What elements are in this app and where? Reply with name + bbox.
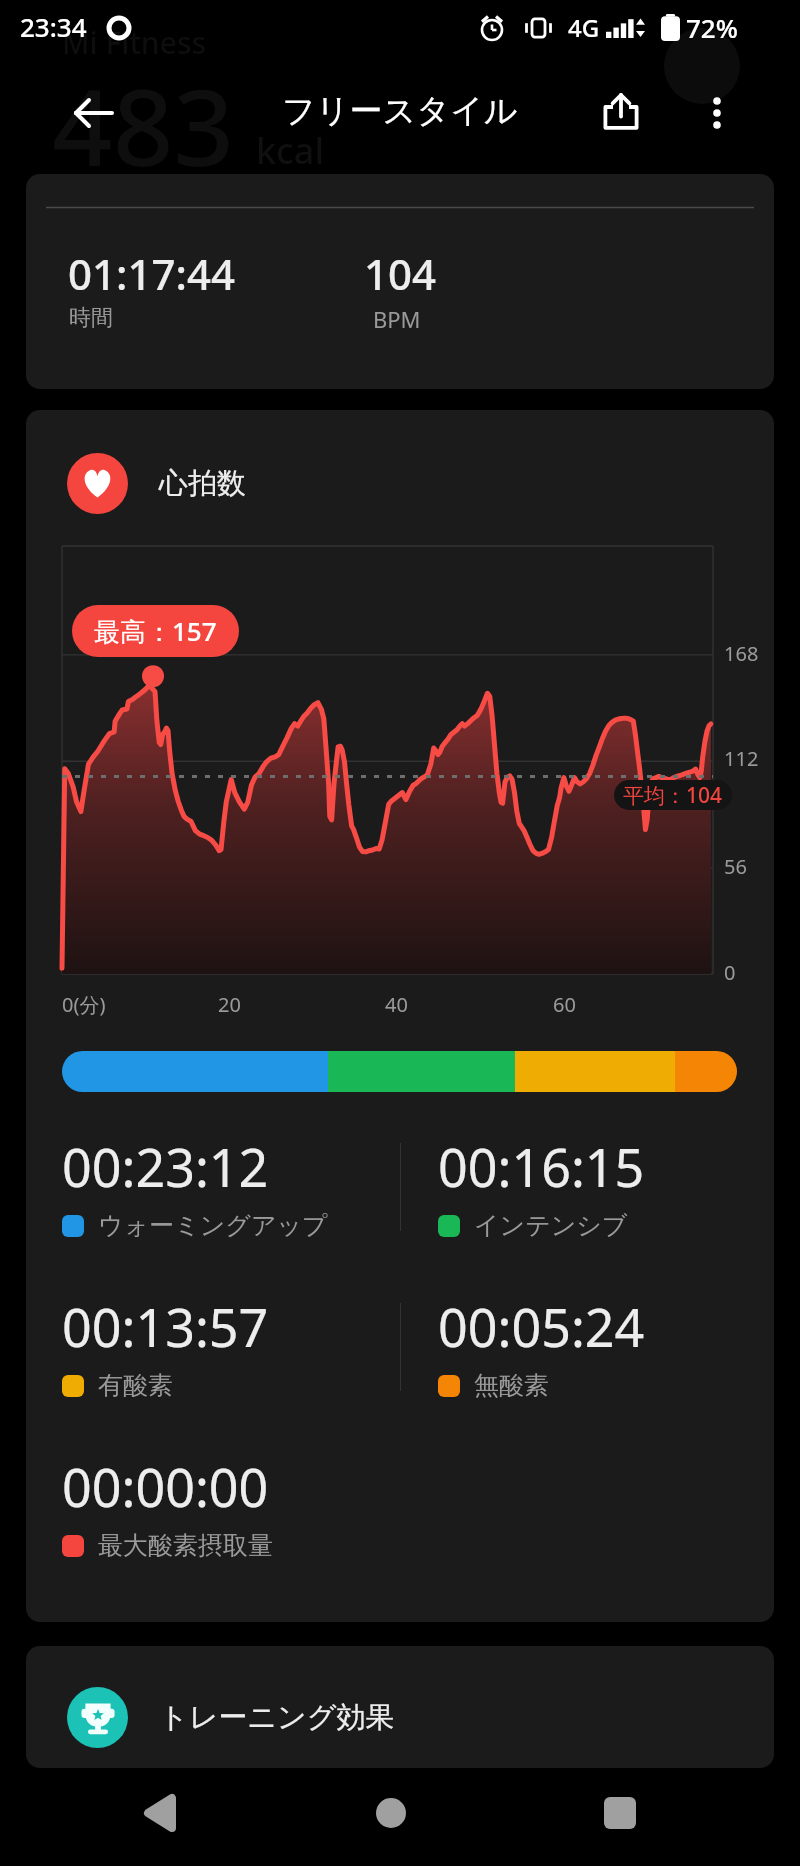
- staticText: 60: [553, 991, 576, 1018]
- staticText: 112: [724, 745, 759, 772]
- staticText: 168: [724, 640, 759, 667]
- staticText: 0(分): [62, 991, 106, 1018]
- button[interactable]: Recent apps: [580, 1773, 660, 1853]
- staticText: 0: [724, 959, 736, 986]
- staticText: 時間: [69, 304, 113, 332]
- staticText: 00:23:12: [62, 1131, 269, 1202]
- staticText: 20: [218, 991, 241, 1018]
- staticText: ウォーミングアップ: [98, 1210, 328, 1241]
- staticText: 23:34: [20, 9, 87, 44]
- staticText: 無酸素: [474, 1370, 549, 1401]
- staticText: 00:13:57: [62, 1291, 269, 1362]
- staticText: 最高：157: [94, 613, 217, 649]
- staticText: 40: [385, 991, 408, 1018]
- staticText: 4G: [568, 11, 600, 44]
- staticText: 104: [364, 245, 437, 302]
- staticText: 心拍数: [159, 465, 246, 502]
- staticText: フリースタイル: [282, 90, 518, 132]
- staticText: 483: [52, 53, 234, 197]
- staticText: 00:05:24: [438, 1291, 645, 1362]
- staticText: BPM: [373, 304, 421, 334]
- staticText: kcal: [256, 126, 325, 175]
- staticText: 最大酸素摂取量: [98, 1530, 273, 1561]
- staticText: 72%: [686, 10, 738, 45]
- staticText: トレーニング効果: [159, 1699, 395, 1736]
- staticText: 00:16:15: [438, 1131, 645, 1202]
- button[interactable]: 01:17:44: [26, 174, 774, 389]
- staticText: 56: [724, 853, 747, 880]
- button[interactable]: Back: [119, 1773, 199, 1853]
- button[interactable]: Back: [60, 79, 128, 147]
- button[interactable]: Home: [351, 1773, 431, 1853]
- staticText: 00:00:00: [62, 1451, 269, 1522]
- button[interactable]: Share: [586, 76, 656, 146]
- staticText: 01:17:44: [68, 245, 235, 302]
- staticText: Mi Fitness: [62, 22, 207, 63]
- staticText: 平均：104: [623, 781, 723, 810]
- button[interactable]: トレーニング効果: [26, 1646, 774, 1768]
- staticText: 有酸素: [98, 1370, 173, 1401]
- button[interactable]: More options: [682, 78, 752, 148]
- staticText: インテンシブ: [474, 1210, 628, 1241]
